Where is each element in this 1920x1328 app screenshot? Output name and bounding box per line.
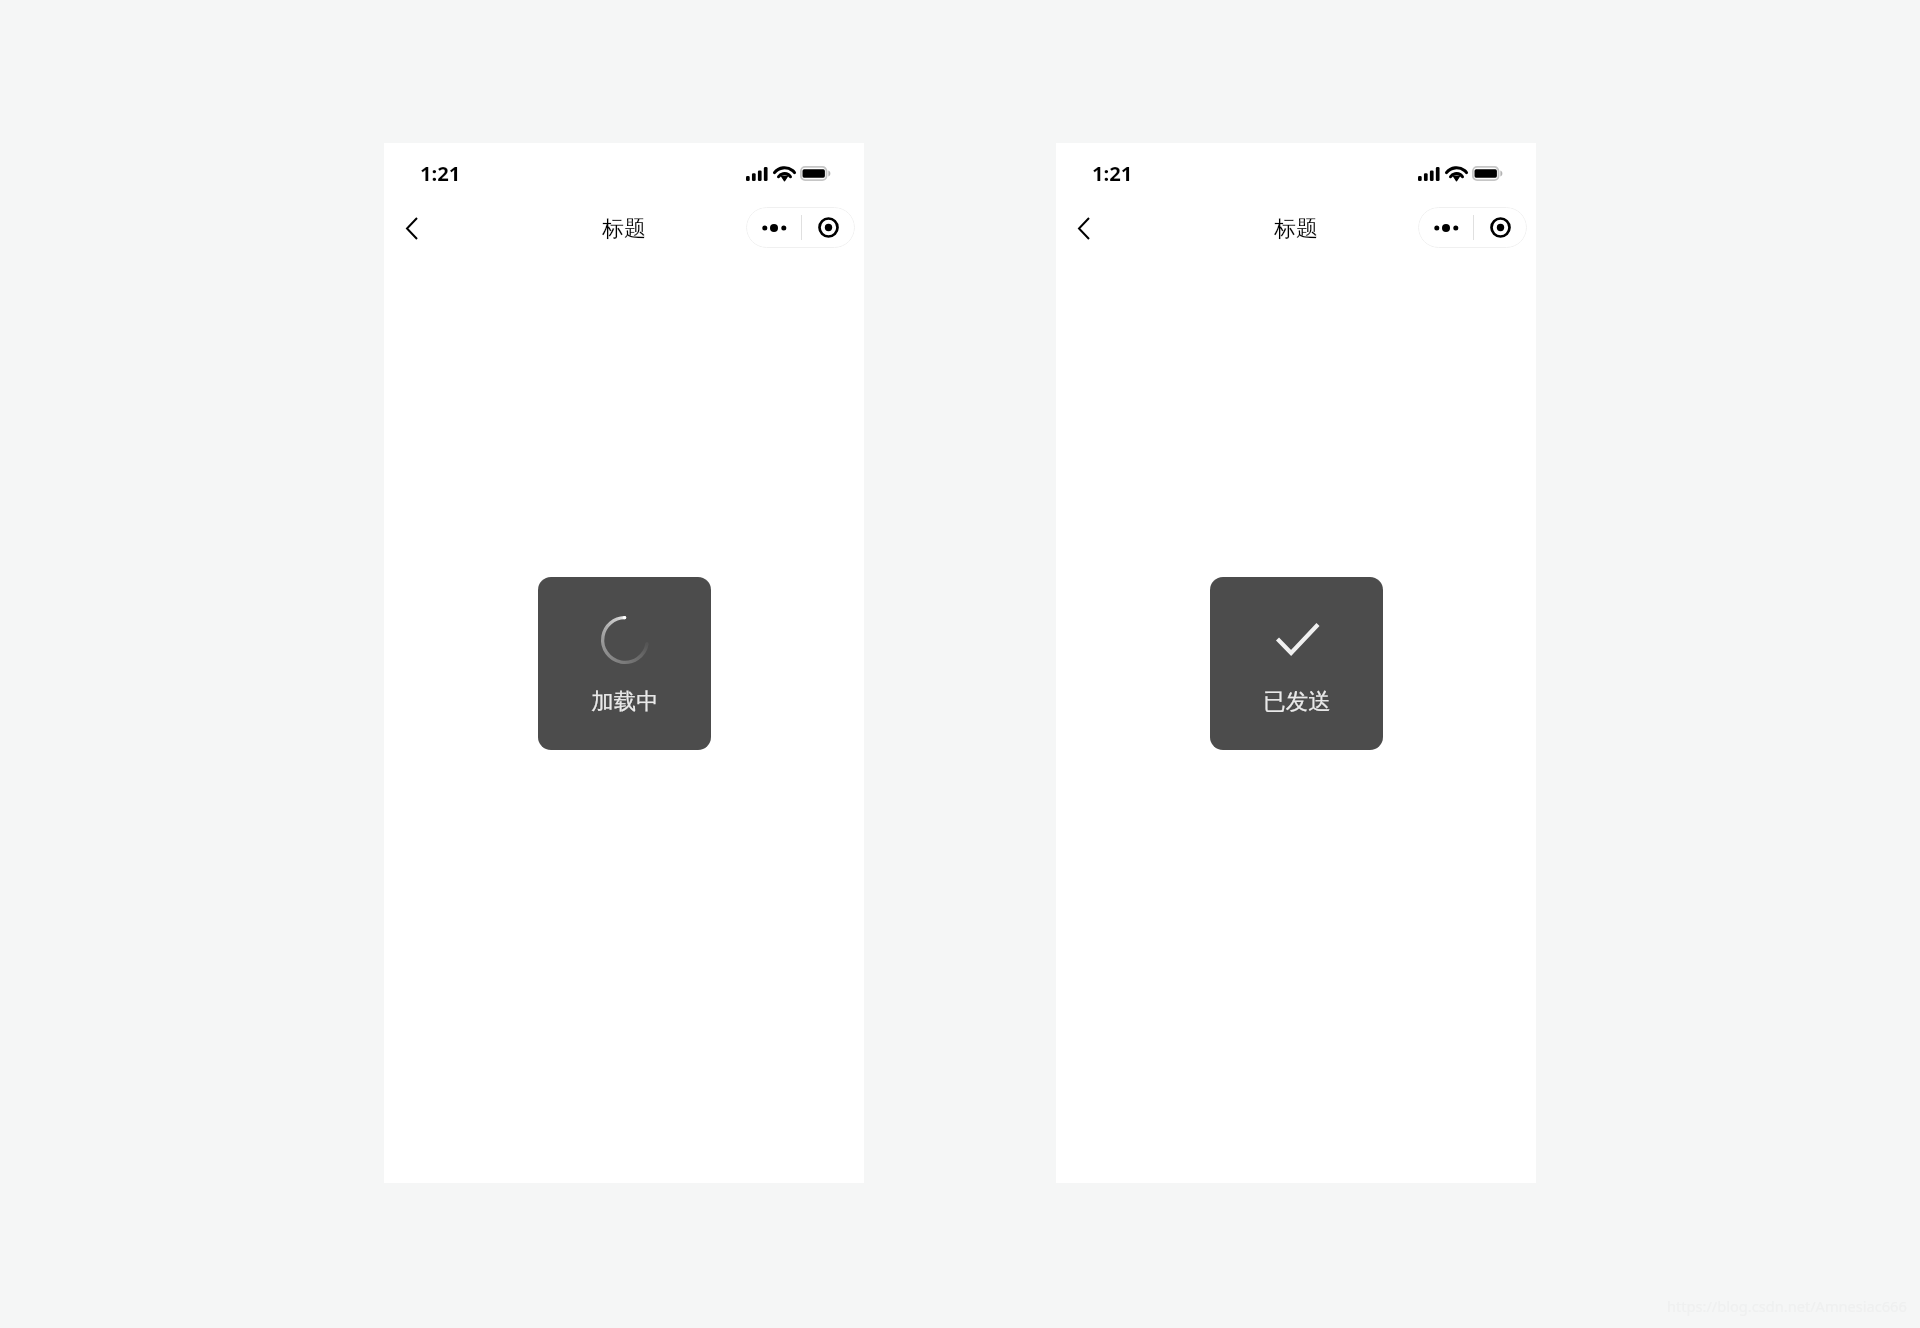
staticText: 1:21 [420, 159, 461, 187]
button[interactable]: Back [390, 206, 434, 250]
button[interactable]: More options [1418, 207, 1473, 248]
button[interactable]: 加载中 [538, 577, 711, 750]
button[interactable]: Close mini program [1474, 207, 1527, 248]
staticText: 标题 [1274, 215, 1318, 243]
button[interactable]: Back [1062, 206, 1106, 250]
button[interactable]: Close mini program [802, 207, 855, 248]
staticText: 标题 [602, 215, 646, 243]
staticText: 已发送 [1263, 687, 1331, 715]
button[interactable]: More options [746, 207, 801, 248]
staticText: 1:21 [1092, 159, 1133, 187]
staticText: 加载中 [591, 687, 659, 715]
button[interactable]: 已发送 [1210, 577, 1383, 750]
